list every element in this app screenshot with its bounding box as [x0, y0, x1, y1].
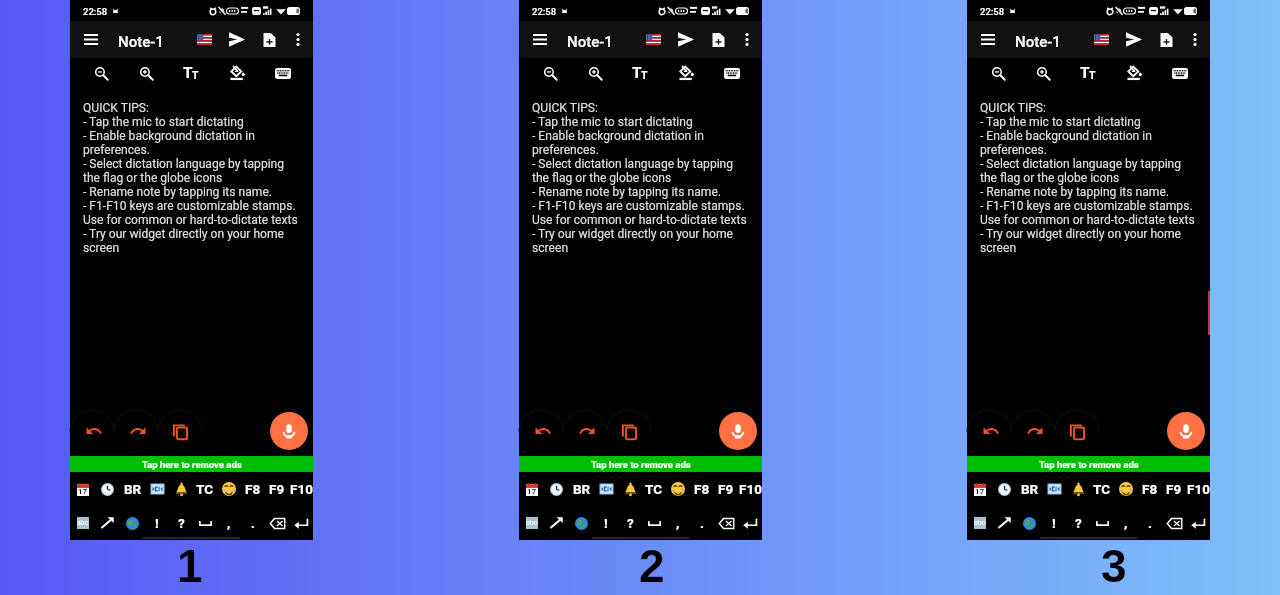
button[interactable]: Navigation menu — [76, 21, 106, 58]
button[interactable]: Space — [1090, 506, 1114, 540]
button[interactable]: Enter — [289, 506, 313, 540]
button[interactable]: Background colour — [1119, 58, 1149, 88]
button[interactable]: Redo — [1013, 416, 1057, 446]
button[interactable]: TC — [642, 472, 666, 506]
button[interactable]: Start dictation — [1167, 412, 1205, 450]
button[interactable]: Backspace — [714, 506, 738, 540]
button[interactable]: BR — [1017, 472, 1042, 506]
button[interactable]: Change language — [1017, 506, 1042, 540]
button[interactable]: Bell stamp — [618, 472, 642, 506]
button[interactable]: TC — [1090, 472, 1114, 506]
button[interactable]: Share note — [1118, 21, 1150, 58]
button[interactable]: Letters — [967, 506, 992, 540]
button[interactable]: F10 — [738, 472, 762, 506]
button[interactable]: Show keyboard — [268, 58, 298, 88]
button[interactable]: Calendar stamp — [519, 472, 544, 506]
button[interactable]: Dictation language — [637, 21, 669, 58]
button[interactable]: Space — [193, 506, 217, 540]
button[interactable]: Undo — [72, 416, 116, 446]
button[interactable]: Copy — [607, 416, 651, 446]
button[interactable]: Share note — [221, 21, 253, 58]
button[interactable]: More options — [1183, 21, 1206, 58]
button[interactable]: Letters — [70, 506, 95, 540]
button[interactable]: Capitalise — [544, 506, 569, 540]
button[interactable]: Email stamp — [145, 472, 169, 506]
button[interactable]: Space — [642, 506, 666, 540]
button[interactable]: Email stamp — [594, 472, 618, 506]
button[interactable]: Backspace — [265, 506, 289, 540]
button[interactable]: Navigation menu — [973, 21, 1003, 58]
button[interactable]: Tap here to remove ads — [70, 456, 313, 472]
button[interactable]: ? — [1066, 506, 1090, 540]
button[interactable]: Show keyboard — [717, 58, 747, 88]
button[interactable]: Navigation menu — [525, 21, 555, 58]
button[interactable]: ? — [618, 506, 642, 540]
button[interactable]: Bell stamp — [169, 472, 193, 506]
button[interactable]: F8 — [690, 472, 714, 506]
button[interactable]: , — [217, 506, 241, 540]
button[interactable]: Note-1 — [567, 33, 613, 51]
button[interactable]: Calendar stamp — [70, 472, 95, 506]
button[interactable]: More options — [286, 21, 309, 58]
button[interactable]: Calendar stamp — [967, 472, 992, 506]
button[interactable]: Redo — [116, 416, 160, 446]
button[interactable]: Text format — [626, 58, 656, 88]
button[interactable]: Text format — [1074, 58, 1104, 88]
button[interactable]: Capitalise — [992, 506, 1017, 540]
button[interactable]: Clock stamp — [95, 472, 120, 506]
button[interactable]: Enter — [738, 506, 762, 540]
button[interactable]: Redo — [565, 416, 609, 446]
button[interactable]: ! — [145, 506, 169, 540]
button[interactable]: Increase text size — [131, 58, 161, 88]
button[interactable]: Letters — [519, 506, 544, 540]
button[interactable]: Undo — [521, 416, 565, 446]
button[interactable]: Emoji stamp — [217, 472, 241, 506]
button[interactable]: New note — [1150, 21, 1182, 58]
button[interactable]: F9 — [714, 472, 738, 506]
button[interactable]: F10 — [1186, 472, 1210, 506]
button[interactable]: Emoji stamp — [1114, 472, 1138, 506]
button[interactable]: Dictation language — [188, 21, 220, 58]
button[interactable]: Bell stamp — [1066, 472, 1090, 506]
button[interactable]: BR — [569, 472, 594, 506]
button[interactable]: More options — [735, 21, 758, 58]
button[interactable]: Start dictation — [719, 412, 757, 450]
button[interactable]: TC — [193, 472, 217, 506]
button[interactable]: Tap here to remove ads — [519, 456, 762, 472]
button[interactable]: Show keyboard — [1165, 58, 1195, 88]
button[interactable]: Decrease text size — [535, 58, 565, 88]
button[interactable]: Change language — [569, 506, 594, 540]
button[interactable]: , — [1114, 506, 1138, 540]
button[interactable]: Clock stamp — [544, 472, 569, 506]
button[interactable]: F10 — [289, 472, 313, 506]
button[interactable]: Dictation language — [1085, 21, 1117, 58]
button[interactable]: Capitalise — [95, 506, 120, 540]
button[interactable]: Background colour — [671, 58, 701, 88]
button[interactable]: Background colour — [222, 58, 252, 88]
button[interactable]: Share note — [670, 21, 702, 58]
button[interactable]: Decrease text size — [86, 58, 116, 88]
button[interactable]: Start dictation — [270, 412, 308, 450]
button[interactable]: Tap here to remove ads — [967, 456, 1210, 472]
button[interactable]: Enter — [1186, 506, 1210, 540]
button[interactable]: F8 — [1138, 472, 1162, 506]
button[interactable]: ! — [1042, 506, 1066, 540]
button[interactable]: Note-1 — [118, 33, 164, 51]
button[interactable]: Backspace — [1162, 506, 1186, 540]
button[interactable]: . — [1138, 506, 1162, 540]
button[interactable]: F9 — [265, 472, 289, 506]
button[interactable]: Decrease text size — [983, 58, 1013, 88]
button[interactable]: Change language — [120, 506, 145, 540]
button[interactable]: Copy — [158, 416, 202, 446]
button[interactable]: F8 — [241, 472, 265, 506]
button[interactable]: Increase text size — [1028, 58, 1058, 88]
button[interactable]: . — [241, 506, 265, 540]
button[interactable]: Emoji stamp — [666, 472, 690, 506]
button[interactable]: Undo — [969, 416, 1013, 446]
button[interactable]: Clock stamp — [992, 472, 1017, 506]
button[interactable]: New note — [253, 21, 285, 58]
button[interactable]: Increase text size — [580, 58, 610, 88]
button[interactable]: ? — [169, 506, 193, 540]
button[interactable]: Email stamp — [1042, 472, 1066, 506]
button[interactable]: , — [666, 506, 690, 540]
